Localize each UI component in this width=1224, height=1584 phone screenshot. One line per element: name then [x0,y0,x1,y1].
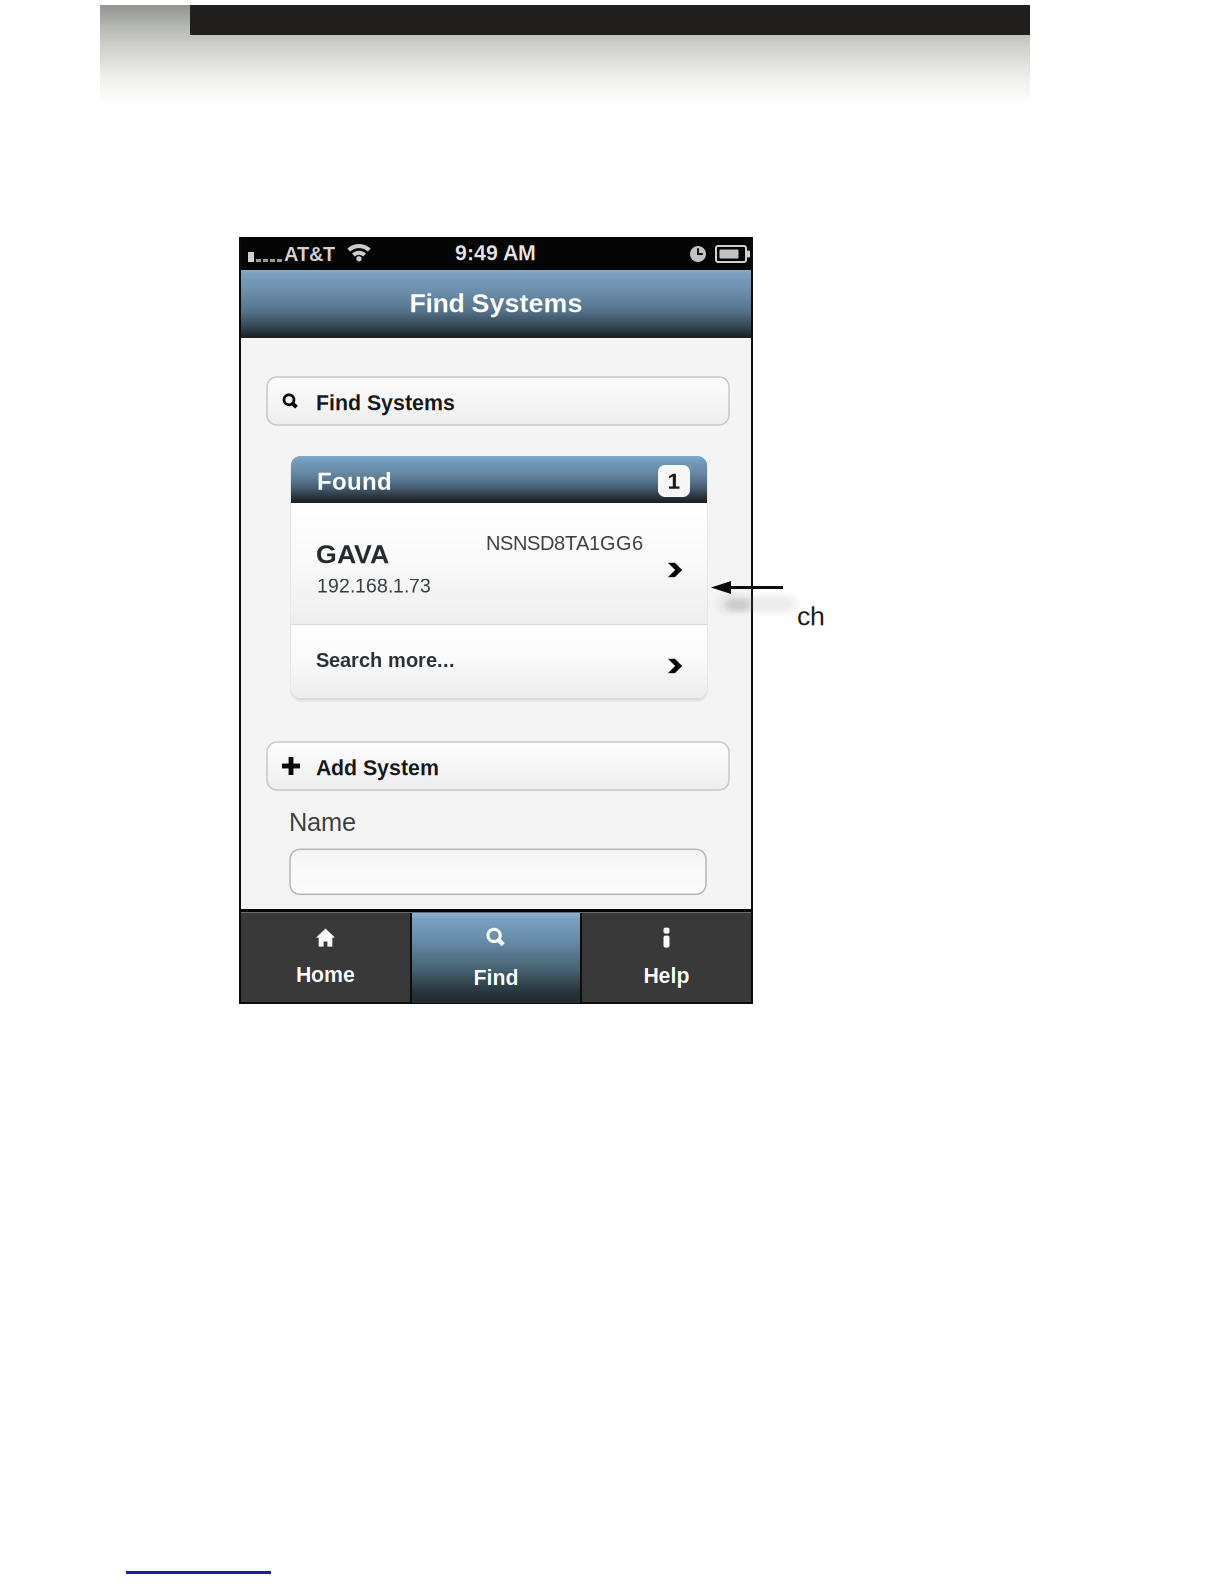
staticText: Find [473,966,518,989]
staticText: Add System [316,756,439,780]
button[interactable]: GAVA [291,503,707,624]
button[interactable]: Find Systems [267,377,729,425]
button[interactable]: Help [582,913,751,1002]
staticText: Search more... [316,649,455,671]
staticText: Name [289,808,356,836]
staticText: 192.168.1.73 [317,575,431,597]
button[interactable]: Search more... [291,625,707,698]
staticText: Find Systems [409,288,582,318]
staticText: AT&T [284,243,335,265]
staticText: 9:49 AM [455,241,536,265]
staticText: NSNSD8TA1GG6 [486,532,643,554]
staticText: 1 [667,468,680,494]
staticText: Find Systems [316,391,455,415]
staticText: ch [797,601,825,631]
button[interactable]: Add System [267,742,729,790]
button[interactable]: Find [412,913,580,1002]
staticText: GAVA [316,539,389,569]
staticText: Home [296,963,355,986]
staticText: Found [317,468,392,495]
button[interactable]: Home [241,913,410,1002]
staticText: Help [643,964,689,987]
